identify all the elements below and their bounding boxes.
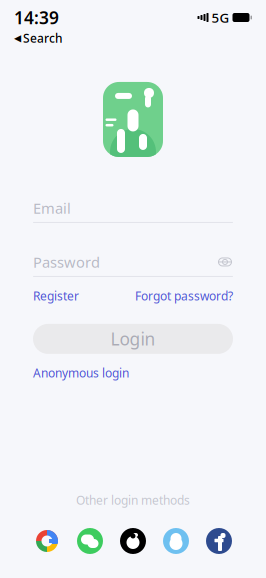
staticText: 5G xyxy=(211,9,229,26)
button[interactable]: Show password xyxy=(217,254,233,270)
button[interactable]: Sign in with QQ xyxy=(163,528,189,554)
button[interactable]: Register xyxy=(33,288,79,304)
staticText: Forgot password? xyxy=(135,288,233,304)
staticText: Register xyxy=(33,288,79,304)
staticText: Login xyxy=(110,327,155,350)
staticText: Anonymous login xyxy=(33,365,129,381)
button[interactable]: Sign in with Facebook xyxy=(206,528,232,554)
staticText: 14:39 xyxy=(14,6,59,29)
button[interactable]: Login xyxy=(33,324,233,354)
staticText: Email xyxy=(33,198,71,218)
staticText: Password xyxy=(33,252,100,272)
button[interactable]: Anonymous login xyxy=(33,365,129,381)
staticText: ◀ xyxy=(14,33,21,43)
button[interactable]: Sign in with Apple xyxy=(120,528,146,554)
button[interactable]: Sign in with WeChat xyxy=(77,528,103,554)
staticText: Search xyxy=(23,30,63,46)
button[interactable]: ◀ xyxy=(14,30,63,46)
staticText: Other login methods xyxy=(76,492,190,508)
button[interactable]: Forgot password? xyxy=(135,288,233,304)
button[interactable]: Sign in with Google xyxy=(34,528,60,554)
